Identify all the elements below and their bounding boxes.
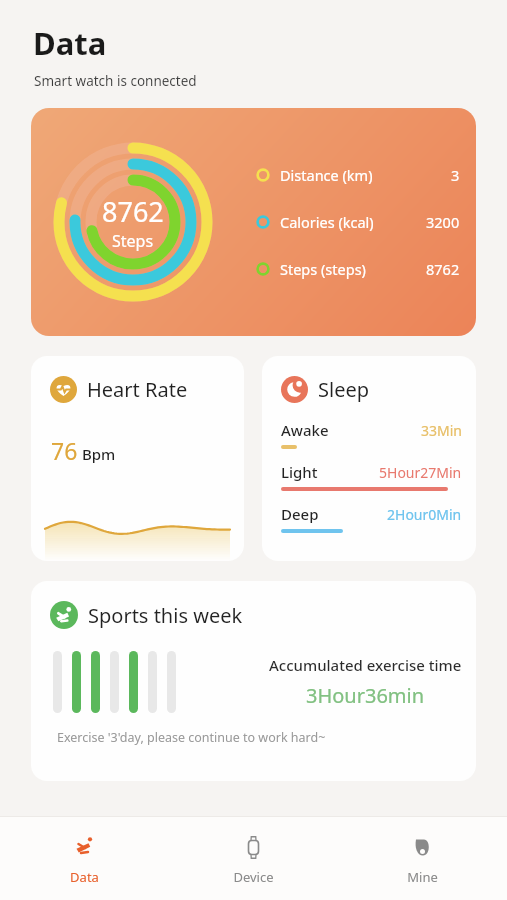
staticText: Steps bbox=[112, 230, 154, 252]
staticText: 8762 bbox=[102, 193, 164, 230]
button[interactable]: Data bbox=[0, 817, 169, 900]
staticText: Mine bbox=[407, 868, 438, 886]
staticText: Data bbox=[33, 22, 107, 64]
staticText: Heart Rate bbox=[87, 376, 188, 403]
staticText: 5Hour27Min bbox=[379, 463, 462, 482]
button[interactable]: Sports this week bbox=[31, 581, 476, 781]
staticText: 76 bbox=[51, 435, 78, 466]
staticText: Steps (steps) bbox=[280, 259, 366, 279]
button[interactable]: Mine bbox=[338, 817, 507, 900]
staticText: 8762 bbox=[426, 259, 460, 279]
staticText: Sleep bbox=[318, 376, 369, 403]
button[interactable]: 8762 bbox=[31, 108, 476, 336]
staticText: 3 bbox=[451, 165, 460, 185]
staticText: Device bbox=[233, 868, 274, 886]
staticText: Bpm bbox=[82, 444, 116, 464]
staticText: 3Hour36min bbox=[306, 682, 425, 709]
staticText: Deep bbox=[281, 504, 319, 524]
staticText: Awake bbox=[281, 420, 329, 440]
staticText: Light bbox=[281, 462, 318, 482]
staticText: Calories (kcal) bbox=[280, 212, 374, 232]
button[interactable]: Sleep bbox=[262, 356, 476, 561]
staticText: Sports this week bbox=[88, 602, 243, 629]
staticText: Data bbox=[70, 868, 99, 886]
staticText: 3200 bbox=[426, 212, 460, 232]
button[interactable]: Device bbox=[169, 817, 338, 900]
staticText: Accumulated exercise time bbox=[269, 655, 462, 675]
staticText: 2Hour0Min bbox=[387, 505, 462, 524]
staticText: Exercise '3'day, please continue to work… bbox=[57, 729, 326, 746]
staticText: Smart watch is connected bbox=[34, 72, 197, 90]
staticText: 33Min bbox=[421, 421, 462, 440]
button[interactable]: Heart Rate bbox=[31, 356, 244, 561]
staticText: Distance (km) bbox=[280, 165, 373, 185]
